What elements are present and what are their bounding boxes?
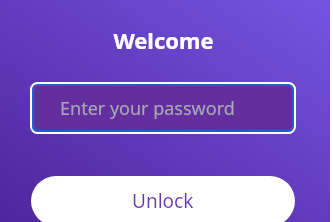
button[interactable]: Enter your password (34, 86, 292, 130)
button[interactable]: Unlock (31, 176, 295, 222)
staticText: Unlock (132, 188, 194, 214)
staticText: Enter your password (60, 96, 235, 121)
staticText: Welcome (113, 25, 214, 55)
